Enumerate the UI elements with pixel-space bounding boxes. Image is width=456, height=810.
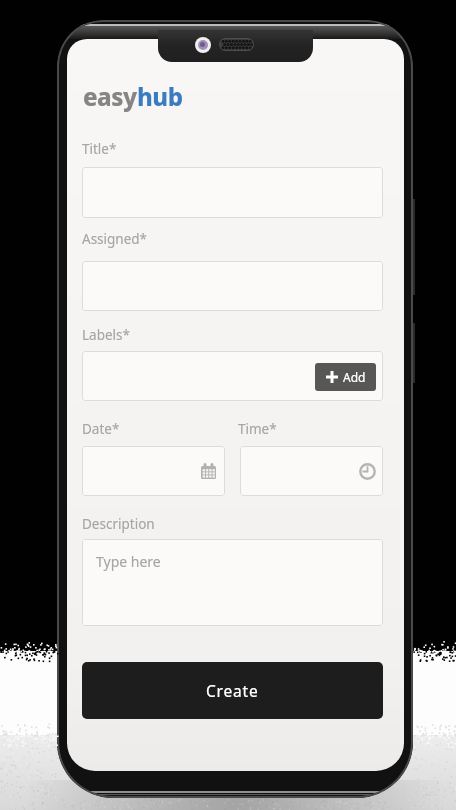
staticText: hub: [137, 80, 183, 113]
staticText: Date*: [82, 420, 120, 438]
staticText: Assigned*: [82, 230, 148, 248]
staticText: Create: [206, 680, 259, 701]
button[interactable]: [82, 446, 225, 496]
button[interactable]: [240, 446, 383, 496]
button[interactable]: [82, 167, 383, 218]
staticText: easy: [83, 80, 137, 113]
staticText: Type here: [96, 552, 161, 571]
button[interactable]: Add: [315, 363, 376, 391]
button[interactable]: Type here: [82, 539, 383, 626]
button[interactable]: [82, 351, 383, 401]
staticText: Title*: [82, 140, 117, 158]
staticText: Labels*: [82, 326, 130, 344]
button[interactable]: Create: [82, 662, 383, 719]
button[interactable]: [82, 261, 383, 311]
staticText: Add: [343, 369, 366, 385]
staticText: Description: [82, 515, 155, 533]
staticText: Time*: [238, 420, 277, 438]
